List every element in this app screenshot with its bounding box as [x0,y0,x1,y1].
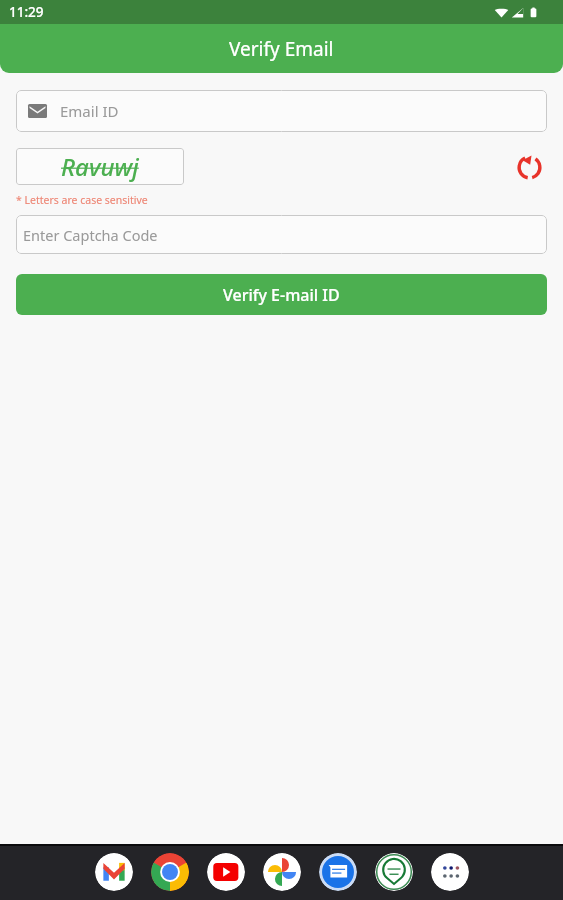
staticText: Email ID [60,101,119,121]
button[interactable]: Chrome [151,853,189,891]
staticText: * Letters are case sensitive [16,193,148,207]
button[interactable]: Enter Captcha Code [16,215,547,254]
button[interactable]: App [375,853,413,891]
button[interactable]: Verify E-mail ID [16,274,547,315]
staticText: Verify Email [229,36,334,62]
button[interactable]: Email ID [16,90,547,132]
button[interactable]: YouTube [207,853,245,891]
button[interactable]: Gmail [95,853,133,891]
button[interactable]: Refresh captcha [513,151,545,183]
staticText: 11:29 [9,3,44,21]
staticText: Verify E-mail ID [223,284,340,306]
button[interactable]: All apps [431,853,469,891]
staticText: Enter Captcha Code [23,225,158,245]
button[interactable]: Photos [263,853,301,891]
button[interactable]: Messages [319,853,357,891]
staticText: Ravuwj [61,150,139,183]
